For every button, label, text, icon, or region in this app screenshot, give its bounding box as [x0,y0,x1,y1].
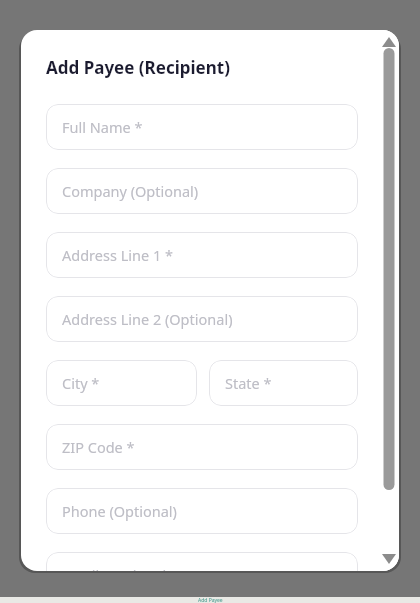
button[interactable]: Full Name * [46,104,358,150]
staticText: Address Line 1 * [62,245,173,265]
button[interactable]: ZIP Code * [46,424,358,470]
button[interactable]: Add Payee (Recipient) [46,56,230,79]
staticText: Company (Optional) [62,181,199,201]
staticText: Address Line 2 (Optional) [62,309,233,329]
button[interactable]: Email (Optional) [46,552,358,571]
staticText: Chase Salem [38,21,120,39]
staticText: City * [62,373,100,393]
staticText: JPMORGAN CHASE BANK ****6790 [125,22,337,39]
staticText: Add Payee [198,597,223,603]
button[interactable]: Scroll form [379,30,399,571]
button[interactable]: Address Line 1 * [46,232,358,278]
staticText: Email (Optional) [62,565,171,571]
staticText: ZIP Code * [62,437,135,457]
button[interactable]: Company (Optional) [46,168,358,214]
button[interactable]: Address Line 2 (Optional) [46,296,358,342]
button[interactable]: City * [46,360,197,406]
staticText: State * [225,373,272,393]
staticText: Add Payee (Recipient) [46,56,230,79]
staticText: Phone (Optional) [62,501,177,521]
button[interactable]: Phone (Optional) [46,488,358,534]
staticText: Full Name * [62,117,143,137]
button[interactable]: State * [209,360,358,406]
